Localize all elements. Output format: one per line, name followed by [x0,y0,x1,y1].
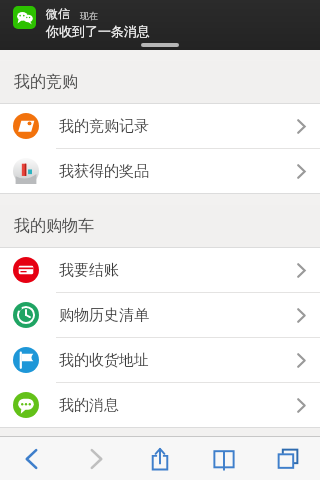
button[interactable]: 我要结账 [0,248,320,293]
button[interactable]: 微信 [0,0,320,50]
button[interactable]: 我的收货地址 [0,338,320,383]
button[interactable]: 我的竞购记录 [0,104,320,149]
staticText: 我要结账 [59,261,119,280]
staticText: 我的购物车 [14,216,94,236]
staticText: 微信 [46,6,70,21]
button[interactable]: Tabs [256,437,320,480]
staticText: 你收到了一条消息 [46,23,150,39]
button[interactable]: Bookmarks [192,437,256,480]
button[interactable]: 我的消息 [0,383,320,427]
staticText: 我的消息 [59,396,119,415]
button[interactable]: 我获得的奖品 [0,149,320,193]
staticText: 现在 [80,10,98,21]
button[interactable]: Back [0,437,64,480]
staticText: 我的竞购记录 [59,117,149,136]
staticText: 我的竞购 [14,72,78,92]
button[interactable]: 购物历史清单 [0,293,320,338]
staticText: 我获得的奖品 [59,162,149,181]
button[interactable]: Forward [64,437,128,480]
staticText: 我的收货地址 [59,351,149,370]
button[interactable]: Share [128,437,192,480]
staticText: 购物历史清单 [59,306,149,325]
